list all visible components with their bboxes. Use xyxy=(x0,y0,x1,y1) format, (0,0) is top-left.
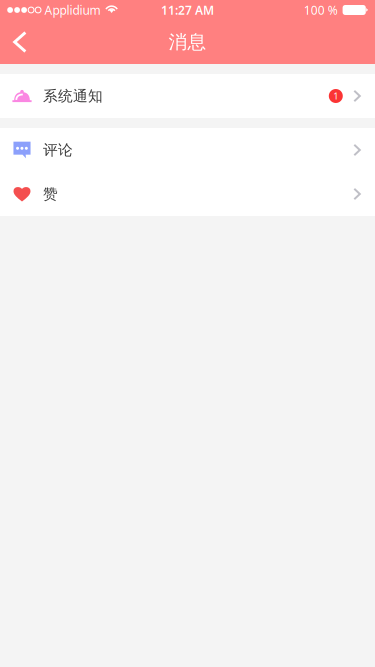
button[interactable]: 系统通知 xyxy=(0,74,375,118)
staticText: 11:27 AM xyxy=(161,2,214,18)
staticText: 系统通知 xyxy=(43,87,103,105)
staticText: 100 % xyxy=(304,2,338,18)
staticText: Applidium xyxy=(45,2,101,18)
staticText: 赞 xyxy=(43,185,58,203)
staticText: 评论 xyxy=(43,141,73,159)
button[interactable]: Back xyxy=(0,20,40,64)
staticText: 1 xyxy=(333,90,338,102)
staticText: 消息 xyxy=(168,30,206,53)
button[interactable]: 评论 xyxy=(0,128,375,172)
button[interactable]: 赞 xyxy=(0,172,375,216)
